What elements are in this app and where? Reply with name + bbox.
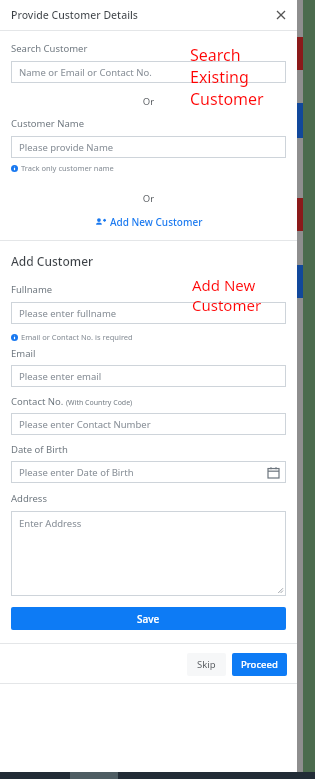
staticText: Add New (192, 275, 256, 295)
button[interactable]: Enter Address (11, 511, 286, 596)
button[interactable]: Skip (187, 653, 226, 676)
staticText: Save (137, 612, 160, 626)
staticText: Email or Contact No. is required (21, 332, 133, 342)
button[interactable]: Please enter Date of Birth (11, 461, 286, 483)
button[interactable]: Add New Customer (11, 215, 286, 229)
button[interactable]: Please enter email (11, 365, 286, 387)
staticText: Customer (190, 88, 264, 110)
staticText: Track only customer name (21, 163, 114, 173)
staticText: Please enter fullname (19, 307, 117, 320)
staticText: Fullname (11, 283, 53, 296)
button[interactable]: Proceed (232, 653, 287, 676)
staticText: Contact No. (11, 395, 64, 408)
staticText: Provide Customer Details (11, 8, 138, 22)
staticText: Please enter email (19, 370, 102, 383)
button[interactable]: Please enter Contact Number (11, 413, 286, 435)
button[interactable]: Name or Email or Contact No. (11, 61, 286, 83)
staticText: Existing (190, 66, 249, 88)
staticText: Address (11, 492, 47, 505)
staticText: Add New Customer (110, 215, 203, 229)
staticText: Email (11, 347, 36, 360)
button[interactable]: Please provide Name (11, 136, 286, 158)
staticText: Or (11, 95, 286, 108)
staticText: Customer (192, 295, 262, 315)
staticText: Please enter Contact Number (19, 418, 151, 431)
button[interactable]: Please enter fullname (11, 302, 286, 324)
staticText: Please enter Date of Birth (19, 466, 134, 479)
staticText: Search (190, 44, 241, 66)
staticText: Name or Email or Contact No. (19, 66, 152, 79)
button[interactable]: Save (11, 607, 286, 630)
staticText: (With Country Code) (66, 398, 133, 408)
staticText: Customer Name (11, 117, 85, 130)
button[interactable]: Close (273, 7, 289, 23)
staticText: Proceed (241, 658, 278, 671)
staticText: Add Customer (11, 253, 94, 269)
staticText: Search Customer (11, 42, 88, 55)
staticText: Enter Address (19, 517, 82, 530)
staticText: Skip (197, 658, 216, 671)
staticText: Or (11, 192, 286, 205)
staticText: Please provide Name (19, 141, 114, 154)
staticText: Date of Birth (11, 443, 68, 456)
